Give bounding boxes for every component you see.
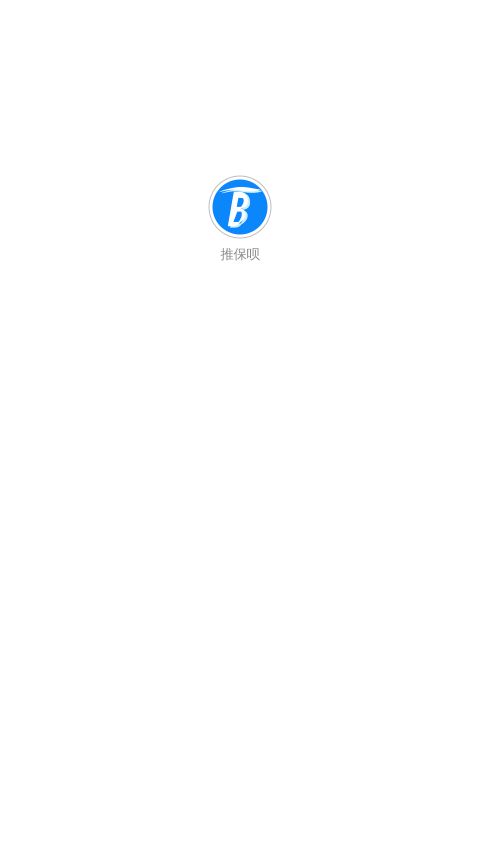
staticText: 推保呗 [220,246,259,262]
